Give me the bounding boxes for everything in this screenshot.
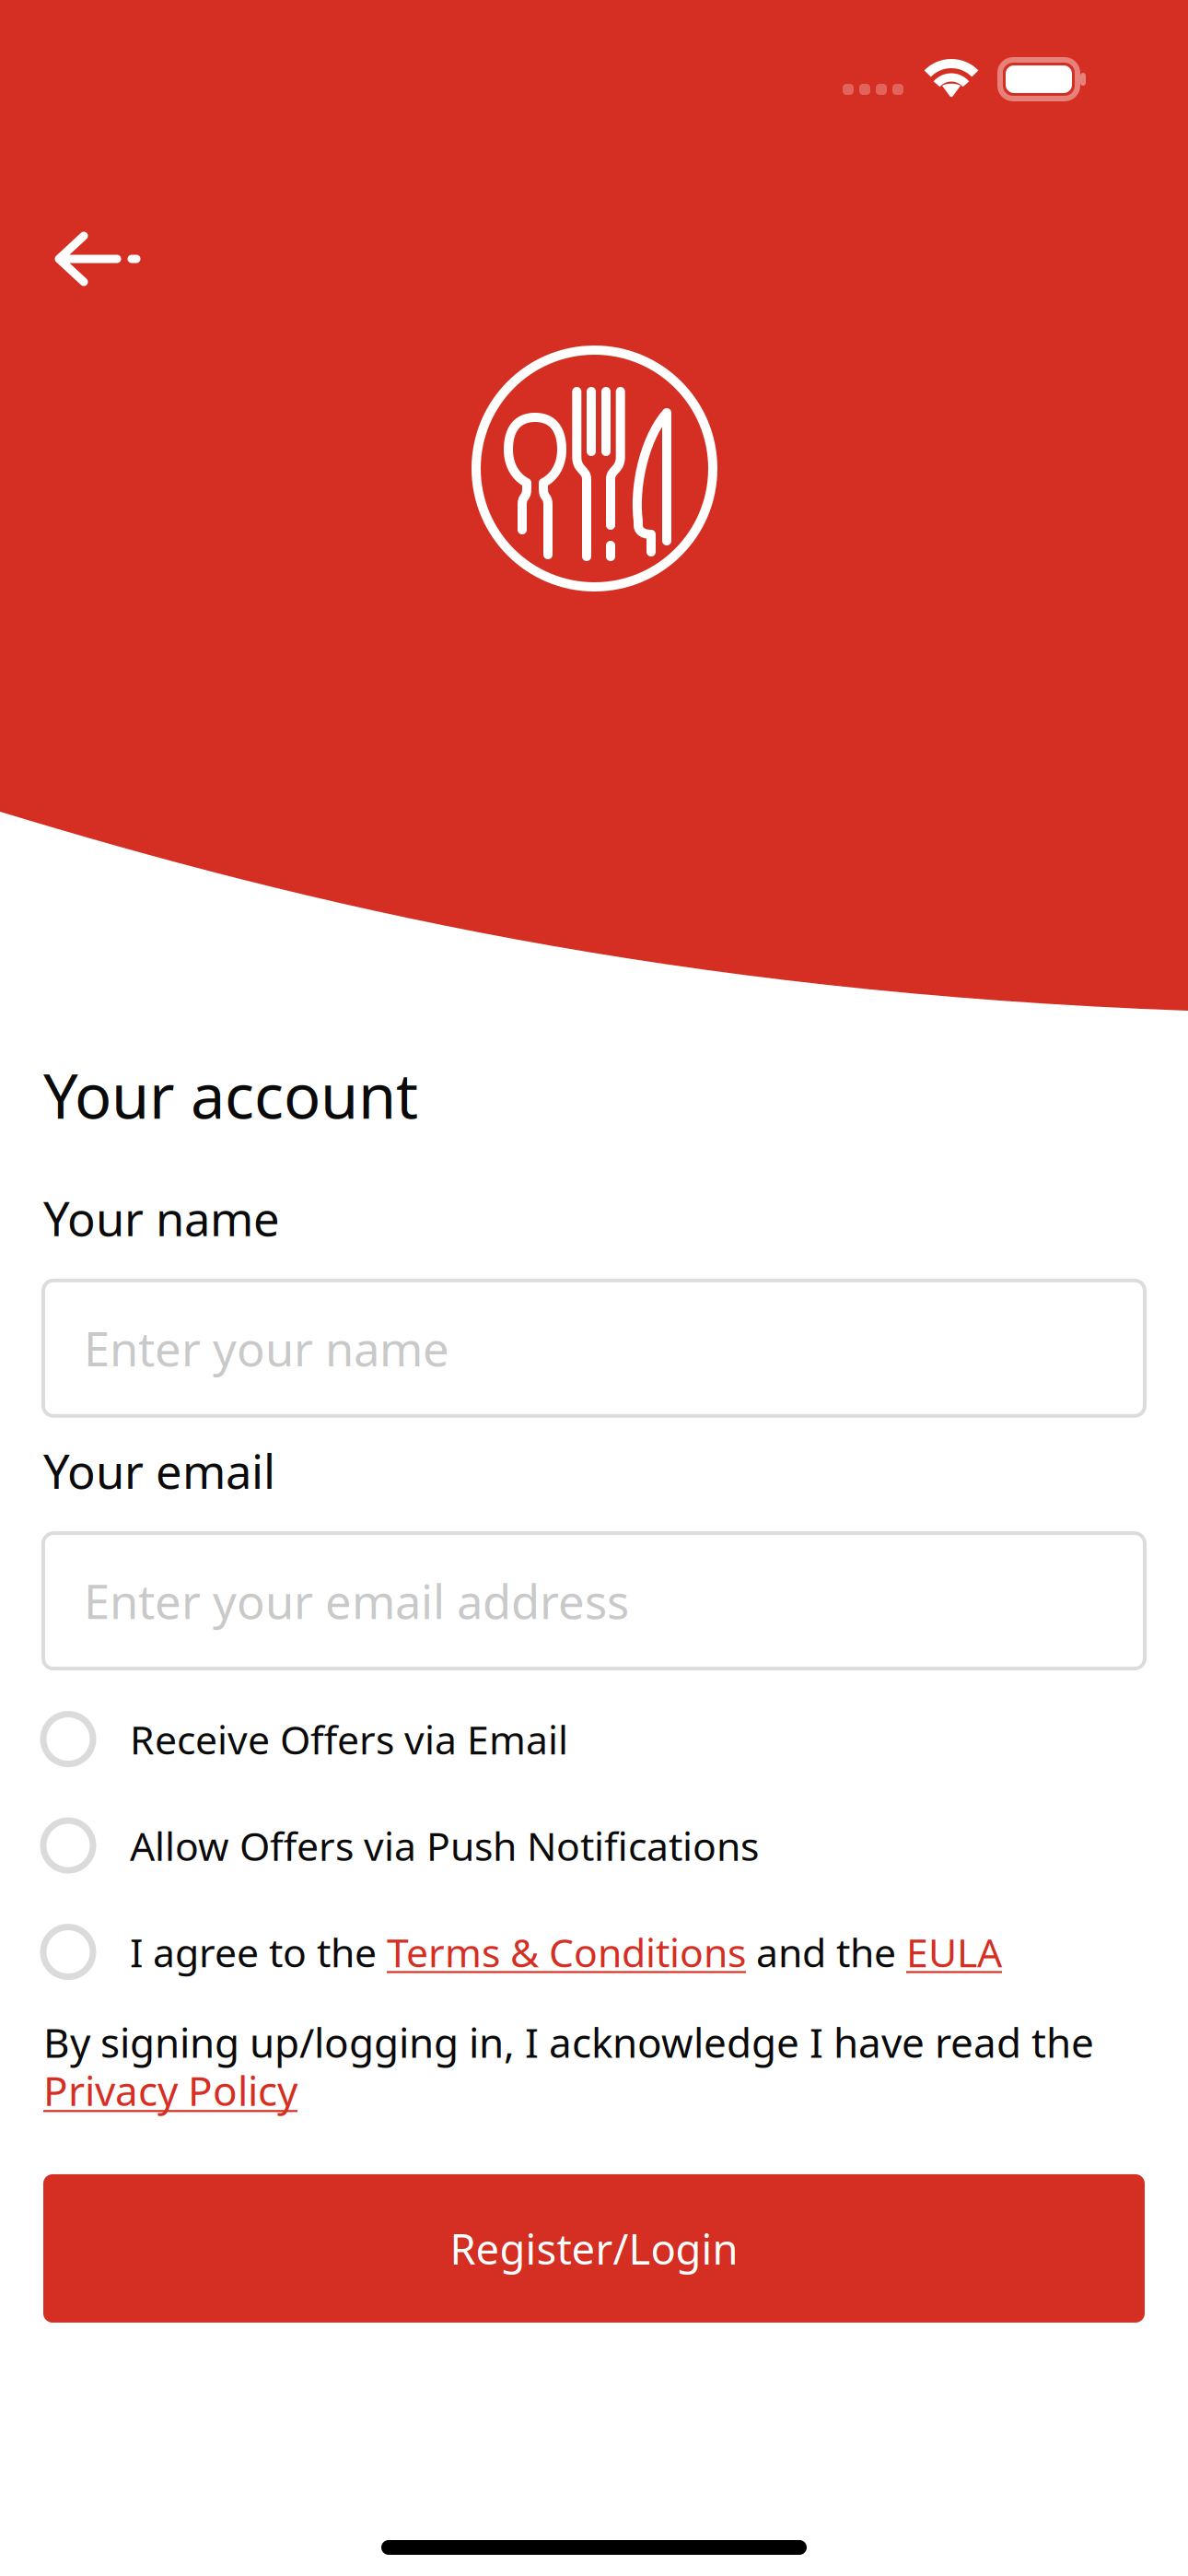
button[interactable]: Register/Login: [43, 2174, 1145, 2323]
staticText: Privacy Policy: [43, 2063, 297, 2117]
staticText: Enter your email address: [84, 1570, 629, 1632]
button[interactable]: Enter your email address: [43, 1533, 1145, 1669]
staticText: Allow Offers via Push Notifications: [130, 1819, 759, 1872]
button[interactable]: Back: [30, 207, 165, 310]
button[interactable]: I agree to the Terms & Conditions and th…: [43, 1898, 1145, 2006]
staticText: I agree to the Terms & Conditions and th…: [130, 1926, 1002, 1978]
staticText: Your email: [43, 1440, 275, 1502]
button[interactable]: Receive Offers via Email: [43, 1685, 1145, 1793]
staticText: Register/Login: [450, 2221, 738, 2276]
staticText: By signing up/logging in, I acknowledge …: [43, 2015, 1094, 2069]
staticText: Enter your name: [84, 1317, 449, 1379]
button[interactable]: Allow Offers via Push Notifications: [43, 1793, 1145, 1898]
staticText: Receive Offers via Email: [130, 1713, 568, 1765]
staticText: Your name: [43, 1187, 280, 1249]
button[interactable]: Privacy Policy: [43, 2063, 297, 2117]
button[interactable]: Enter your name: [43, 1280, 1145, 1416]
staticText: Your account: [43, 1054, 418, 1136]
